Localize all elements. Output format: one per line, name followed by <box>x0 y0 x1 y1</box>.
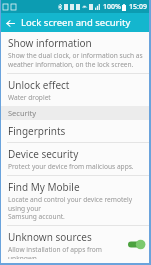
button[interactable]: Navigate up <box>1 14 19 32</box>
staticText: Show the dual clock, or information such… <box>8 51 143 69</box>
button[interactable]: Device security <box>1 143 149 175</box>
staticText: Fingerprints <box>8 124 66 138</box>
button[interactable]: Show information <box>1 32 149 73</box>
staticText: Allow installation of apps from unknown … <box>8 245 124 259</box>
button[interactable]: Unlock effect <box>1 74 149 106</box>
button[interactable]: Unknown sources <box>1 226 149 263</box>
staticText: 15:09 <box>129 2 147 12</box>
staticText: Lock screen and security <box>21 16 131 29</box>
staticText: Find My Mobile <box>8 180 80 194</box>
staticText: Show information <box>8 36 92 50</box>
staticText: 100% <box>103 2 121 12</box>
staticText: Unknown sources <box>8 230 92 244</box>
staticText: Locate and control your device remotely … <box>8 195 146 221</box>
button[interactable]: Unknown sources, on <box>126 238 146 251</box>
staticText: Device security <box>8 147 79 161</box>
button[interactable]: Find My Mobile <box>1 176 149 225</box>
button[interactable]: Fingerprints <box>1 120 149 142</box>
staticText: Water droplet <box>8 93 51 102</box>
staticText: Protect your device from malicious apps. <box>8 162 134 171</box>
staticText: Unlock effect <box>8 78 70 92</box>
staticText: Security <box>8 108 37 118</box>
